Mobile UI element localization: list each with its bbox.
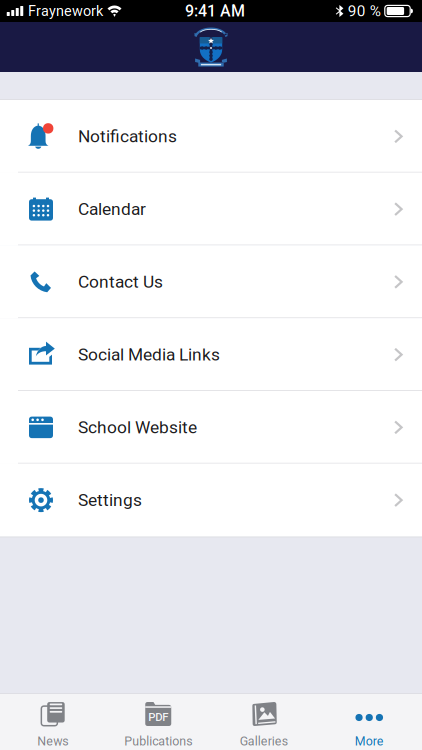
staticText: Notifications (78, 126, 177, 146)
staticText: Publications (124, 734, 192, 748)
button[interactable]: Notifications (0, 100, 422, 173)
staticText: Settings (78, 490, 142, 510)
staticText: 90 % (348, 2, 381, 20)
button[interactable]: PDF (105, 694, 211, 750)
button[interactable]: Galleries (211, 694, 316, 750)
button[interactable]: More (316, 694, 422, 750)
staticText: PDF (148, 711, 168, 724)
staticText: News (37, 734, 68, 748)
button[interactable]: Calendar (0, 173, 422, 246)
staticText: School Website (78, 417, 197, 437)
staticText: More (355, 734, 384, 748)
button[interactable]: School Website (0, 391, 422, 464)
button[interactable]: Settings (0, 464, 422, 537)
staticText: Galleries (240, 734, 288, 748)
button[interactable]: Contact Us (0, 245, 422, 318)
staticText: Contact Us (78, 272, 163, 292)
button[interactable]: Social Media Links (0, 318, 422, 391)
staticText: Social Media Links (78, 344, 220, 365)
staticText: Calendar (78, 199, 146, 219)
button[interactable]: News (0, 694, 105, 750)
staticText: Fraynework (28, 3, 103, 19)
staticText: 9:41 AM (185, 2, 245, 20)
